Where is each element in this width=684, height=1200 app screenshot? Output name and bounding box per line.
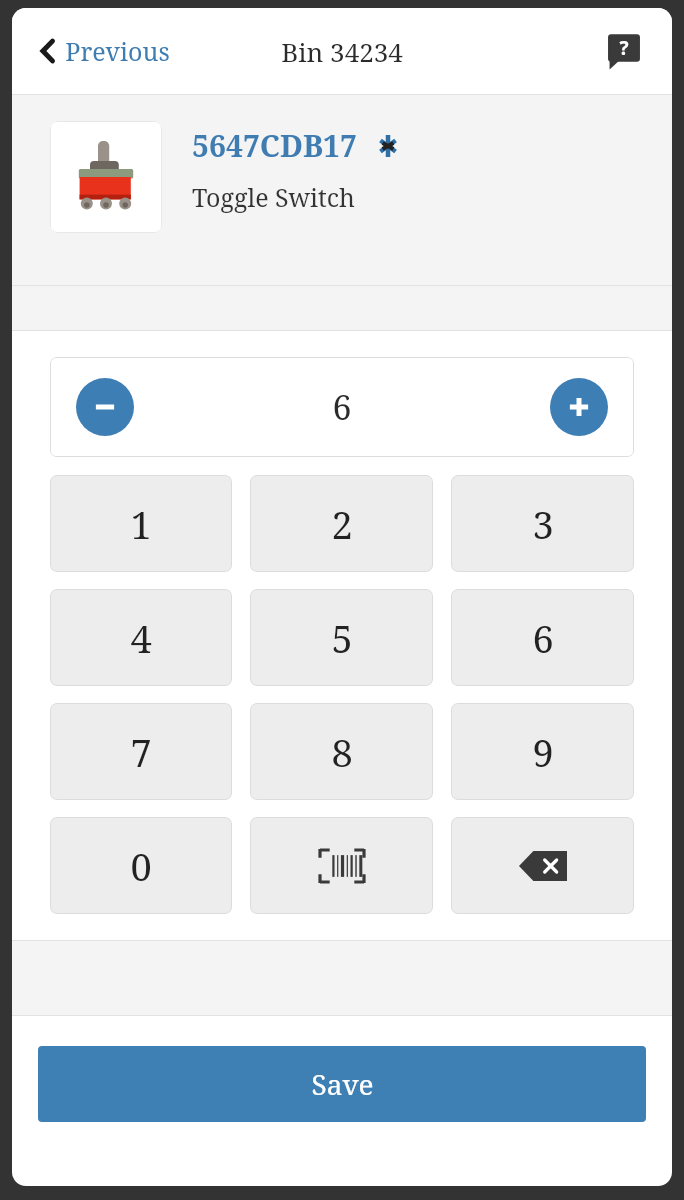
staticText: 0 [130, 840, 152, 892]
staticText: 3 [532, 498, 554, 550]
staticText: 4 [130, 612, 152, 664]
button[interactable]: 7 [50, 703, 232, 800]
button[interactable]: Save [38, 1046, 646, 1122]
button[interactable]: Backspace [451, 817, 634, 914]
staticText: 2 [331, 498, 353, 550]
button[interactable]: 0 [50, 817, 232, 914]
staticText: 6 [332, 384, 352, 430]
button[interactable]: 9 [451, 703, 634, 800]
staticText: 1 [130, 498, 152, 550]
button[interactable]: Help [602, 29, 646, 73]
button[interactable]: 8 [250, 703, 433, 800]
button[interactable]: Increase quantity [550, 378, 608, 436]
staticText: 7 [130, 726, 152, 778]
button[interactable]: 2 [250, 475, 433, 572]
staticText: ? [619, 35, 629, 61]
button[interactable]: 1 [50, 475, 232, 572]
button[interactable]: Scan barcode [250, 817, 433, 914]
staticText: 6 [532, 612, 554, 664]
staticText: 5647CDB17 [192, 125, 357, 166]
staticText: 5 [331, 612, 353, 664]
button[interactable]: 5647CDB17 [12, 95, 672, 285]
staticText: 9 [532, 726, 554, 778]
staticText: 8 [331, 726, 353, 778]
staticText: Toggle Switch [192, 180, 355, 214]
button[interactable]: Previous [34, 28, 176, 74]
staticText: Previous [65, 34, 170, 68]
button[interactable]: 4 [50, 589, 232, 686]
button[interactable]: 3 [451, 475, 634, 572]
staticText: Save [311, 1065, 374, 1103]
button[interactable]: Decrease quantity [76, 378, 134, 436]
button[interactable]: 6 [451, 589, 634, 686]
staticText: Bin 34234 [281, 34, 403, 69]
button[interactable]: 5 [250, 589, 433, 686]
